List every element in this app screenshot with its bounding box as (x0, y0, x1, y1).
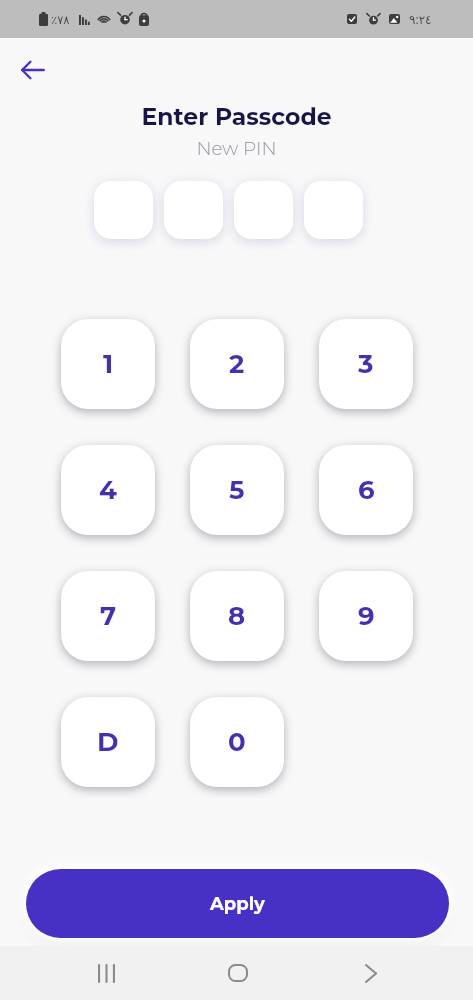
button[interactable] (164, 181, 223, 239)
button[interactable]: 9 (319, 571, 413, 661)
button[interactable]: 0 (190, 697, 284, 787)
staticText: New PIN (0, 137, 473, 160)
button[interactable]: Back (341, 949, 401, 997)
button[interactable]: Recent apps (76, 949, 136, 997)
button[interactable]: 8 (190, 571, 284, 661)
button[interactable] (304, 181, 363, 239)
button[interactable]: 3 (319, 319, 413, 409)
button[interactable]: 2 (190, 319, 284, 409)
button[interactable] (234, 181, 293, 239)
button[interactable]: D (61, 697, 155, 787)
button[interactable]: 1 (61, 319, 155, 409)
staticText: 9 (358, 600, 375, 632)
button[interactable]: Back (11, 48, 55, 92)
staticText: 2 (229, 348, 245, 380)
button[interactable]: 7 (61, 571, 155, 661)
button[interactable] (94, 181, 153, 239)
staticText: 0 (228, 726, 246, 758)
staticText: 5 (229, 474, 245, 506)
staticText: 7 (100, 600, 117, 632)
staticText: D (97, 726, 119, 758)
staticText: 8 (228, 600, 246, 632)
button[interactable]: Apply (26, 869, 449, 938)
staticText: 4 (99, 474, 117, 506)
staticText: Apply (210, 893, 265, 915)
staticText: 3 (358, 348, 374, 380)
staticText: Enter Passcode (0, 102, 473, 131)
staticText: ٪٧٨ (51, 13, 70, 26)
button[interactable]: 5 (190, 445, 284, 535)
button[interactable]: 4 (61, 445, 155, 535)
button[interactable]: Home (208, 949, 268, 997)
staticText: ٩:٢٤ (409, 11, 432, 27)
staticText: 1 (103, 348, 114, 380)
button[interactable]: 6 (319, 445, 413, 535)
staticText: 6 (358, 474, 375, 506)
